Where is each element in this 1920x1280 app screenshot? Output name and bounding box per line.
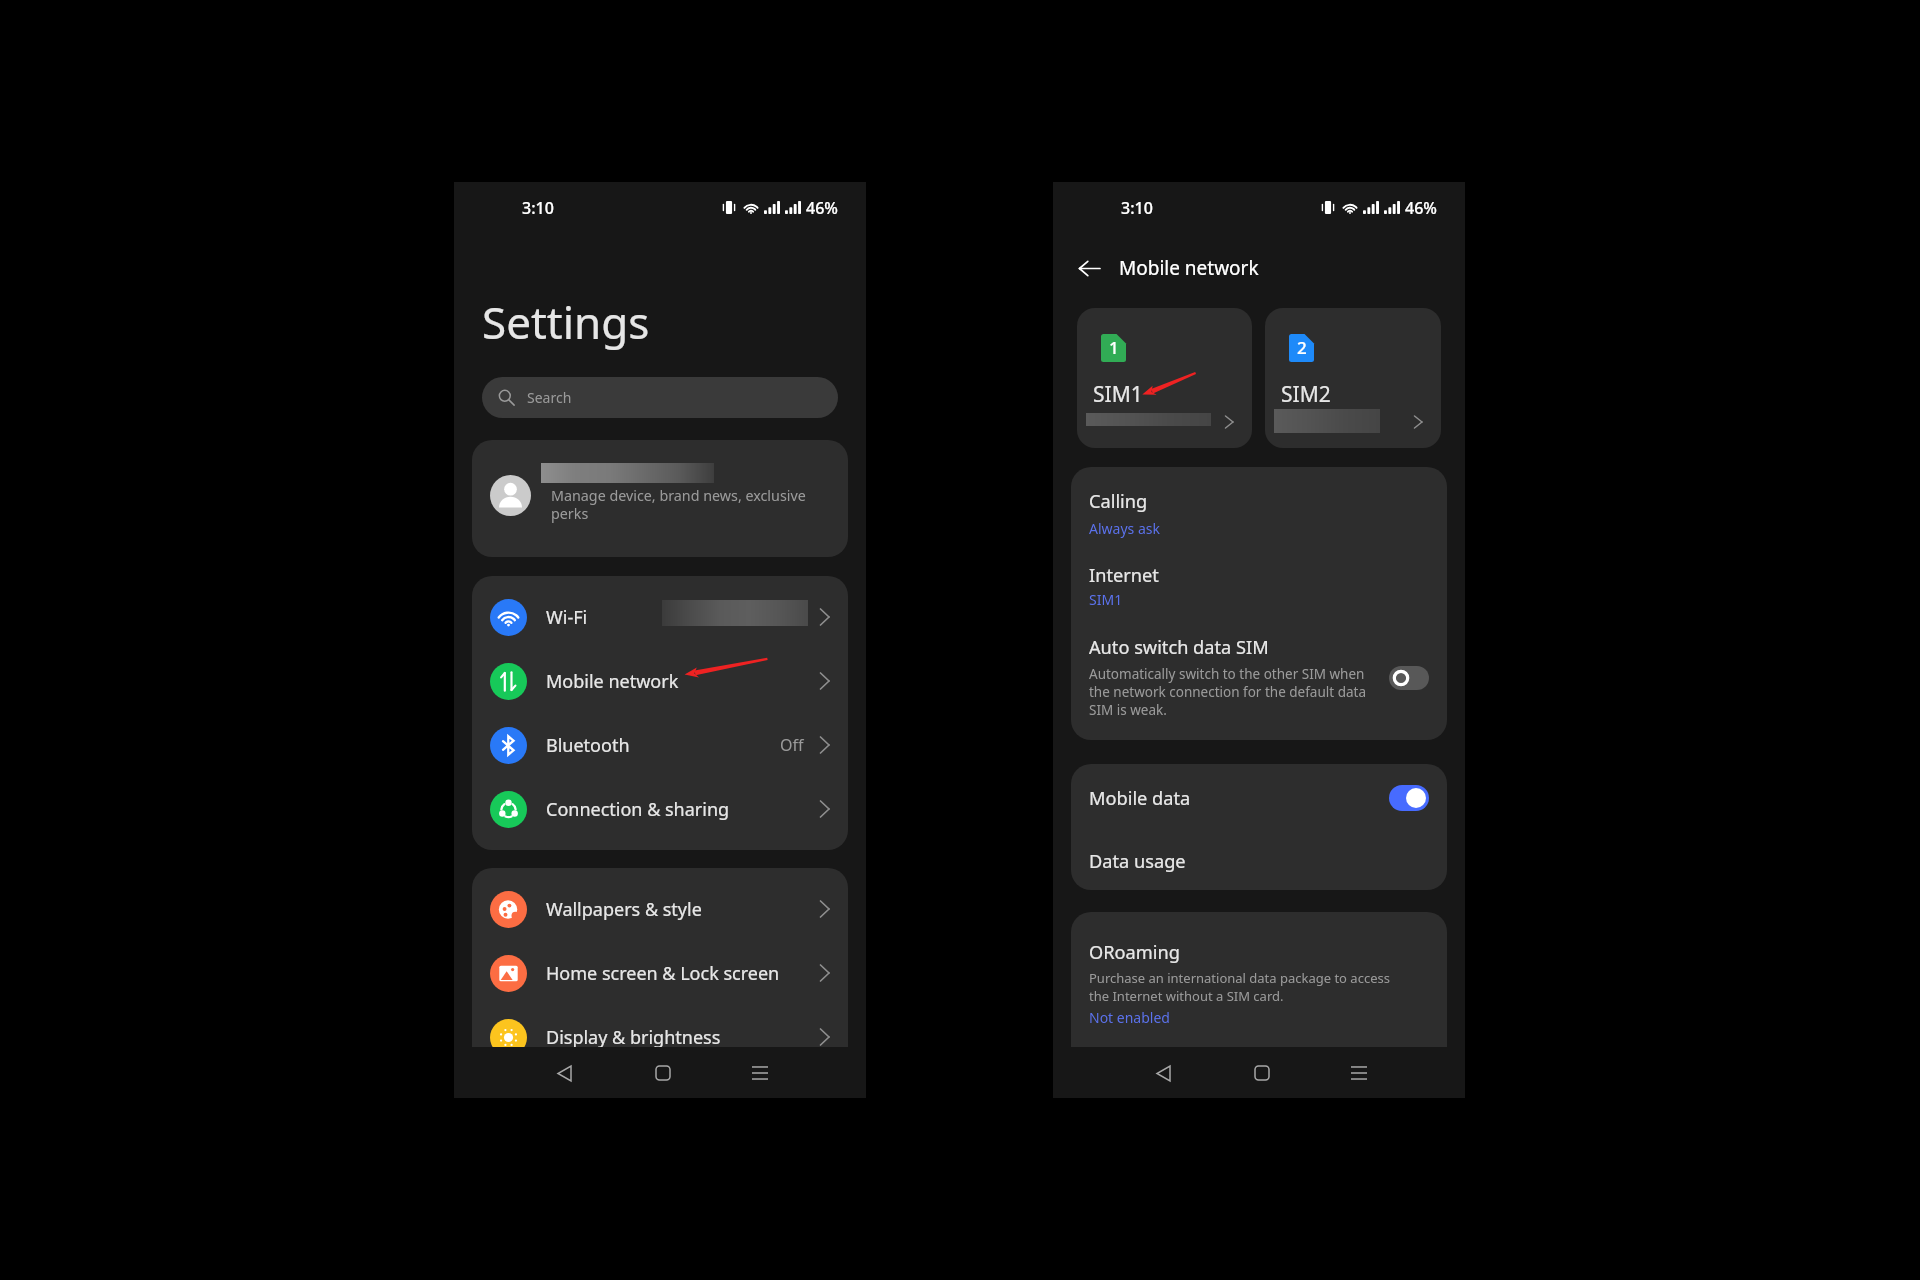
- button[interactable]: Mobile data: [1071, 764, 1447, 832]
- staticText: Automatically switch to the other SIM wh…: [1089, 665, 1373, 719]
- button[interactable]: Data usage: [1071, 832, 1447, 890]
- staticText: Mobile network: [1119, 255, 1259, 281]
- staticText: ORoaming: [1089, 940, 1180, 965]
- other: Open SIM2 settings: [1414, 416, 1422, 428]
- staticText: Auto switch data SIM: [1089, 635, 1269, 660]
- staticText: Not enabled: [1089, 1008, 1170, 1027]
- staticText: Internet: [1089, 563, 1159, 588]
- staticText: Display & brightness: [546, 1025, 721, 1047]
- staticText: Home screen & Lock screen: [546, 961, 780, 986]
- button[interactable]: Connection & sharing: [472, 777, 848, 841]
- staticText: Wi-Fi: [546, 605, 588, 630]
- staticText: 3:10: [522, 197, 554, 219]
- staticText: Calling: [1089, 489, 1148, 514]
- staticText: Mobile network: [546, 669, 679, 694]
- button[interactable]: Manage device, brand news, exclusive per…: [472, 440, 848, 557]
- button[interactable]: Calling: [1089, 489, 1429, 538]
- button[interactable]: Home: [1240, 1051, 1284, 1095]
- button[interactable]: Auto switch data SIM: [1089, 635, 1429, 719]
- button[interactable]: Back: [542, 1051, 586, 1095]
- button[interactable]: ORoaming: [1071, 912, 1447, 1047]
- button[interactable]: Display & brightness: [472, 1005, 848, 1047]
- button[interactable]: Back: [1141, 1051, 1185, 1095]
- staticText: Data usage: [1089, 849, 1186, 874]
- staticText: SIM1: [1089, 590, 1123, 609]
- button[interactable]: Auto switch data SIM, off: [1389, 666, 1429, 690]
- staticText: Always ask: [1089, 519, 1160, 538]
- staticText: 46%: [806, 197, 838, 219]
- button[interactable]: Mobile data, on: [1389, 785, 1429, 811]
- button[interactable]: Search: [482, 377, 838, 418]
- staticText: 46%: [1405, 197, 1437, 219]
- other: Open SIM1 settings: [1225, 416, 1233, 428]
- staticText: Bluetooth: [546, 733, 630, 758]
- staticText: SIM1: [1093, 380, 1143, 409]
- staticText: Manage device, brand news, exclusive per…: [551, 486, 811, 524]
- button[interactable]: Internet: [1089, 563, 1429, 609]
- staticText: Settings: [482, 292, 650, 352]
- button[interactable]: Wallpapers & style: [472, 877, 848, 941]
- button[interactable]: 1: [1077, 308, 1252, 448]
- staticText: 1: [1109, 336, 1119, 359]
- staticText: Purchase an international data package t…: [1089, 969, 1397, 1005]
- staticText: Mobile data: [1089, 786, 1191, 811]
- staticText: Wallpapers & style: [546, 897, 702, 922]
- button[interactable]: Home: [641, 1051, 685, 1095]
- staticText: 2: [1297, 336, 1307, 359]
- staticText: SIM2: [1281, 380, 1331, 409]
- staticText: Connection & sharing: [546, 797, 730, 822]
- button[interactable]: Recent apps: [1337, 1051, 1381, 1095]
- button[interactable]: Recent apps: [738, 1051, 782, 1095]
- staticText: 3:10: [1121, 197, 1153, 219]
- staticText: Search: [527, 388, 572, 407]
- button[interactable]: Home screen & Lock screen: [472, 941, 848, 1005]
- button[interactable]: Bluetooth: [472, 713, 848, 777]
- button[interactable]: Mobile network: [472, 649, 848, 713]
- button[interactable]: Wi-Fi: [472, 585, 848, 649]
- button[interactable]: 2: [1265, 308, 1441, 448]
- button[interactable]: Back: [1071, 250, 1107, 286]
- staticText: Off: [780, 734, 804, 756]
